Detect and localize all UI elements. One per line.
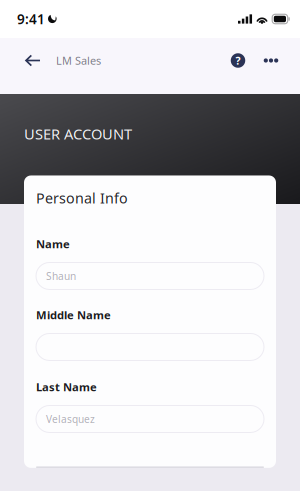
staticText: Personal Info bbox=[36, 188, 128, 208]
button[interactable]: Shaun bbox=[36, 262, 264, 289]
staticText: Middle Name bbox=[36, 307, 111, 323]
staticText: Shaun bbox=[46, 269, 76, 283]
button[interactable]: More options bbox=[254, 38, 288, 83]
staticText: 9:41 bbox=[17, 10, 45, 28]
staticText: LM Sales bbox=[56, 53, 101, 68]
staticText: ? bbox=[235, 53, 240, 68]
staticText: Velasquez bbox=[46, 412, 95, 426]
button[interactable]: Back bbox=[13, 38, 53, 83]
staticText: Last Name bbox=[36, 379, 97, 395]
button[interactable]: Help bbox=[222, 38, 254, 83]
staticText: USER ACCOUNT bbox=[24, 124, 132, 143]
staticText: Name bbox=[36, 236, 70, 252]
button[interactable]: Velasquez bbox=[36, 405, 264, 432]
